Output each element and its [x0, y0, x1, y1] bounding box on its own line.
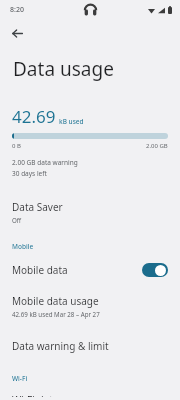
staticText: 2.00 GB: [146, 142, 168, 150]
staticText: Data warning & limit: [12, 339, 109, 353]
staticText: 0 B: [12, 142, 21, 150]
staticText: 30 days left: [12, 169, 47, 178]
button[interactable]: Back: [5, 21, 29, 45]
staticText: Data usage: [13, 56, 114, 82]
staticText: 42.69: [12, 105, 56, 128]
button[interactable]: Data Saver: [0, 197, 180, 227]
staticText: Wi-Fi data usage: [12, 393, 90, 397]
staticText: Mobile data: [12, 263, 142, 277]
staticText: Data Saver: [12, 200, 63, 214]
button[interactable]: Wi-Fi data usage: [0, 390, 180, 400]
button[interactable]: Mobile data usage: [0, 291, 180, 321]
staticText: Mobile data usage: [12, 294, 99, 308]
staticText: 2.00 GB data warning: [12, 158, 78, 167]
staticText: Wi‑Fi: [12, 374, 28, 383]
button[interactable]: Data warning & limit: [0, 335, 180, 357]
staticText: Off: [12, 216, 22, 224]
staticText: Mobile: [12, 242, 34, 251]
staticText: 8:20: [10, 5, 24, 15]
staticText: kB used: [59, 117, 84, 126]
staticText: 42.69 kB used Mar 28 – Apr 27: [12, 310, 100, 318]
button[interactable]: Mobile data: [0, 258, 180, 282]
